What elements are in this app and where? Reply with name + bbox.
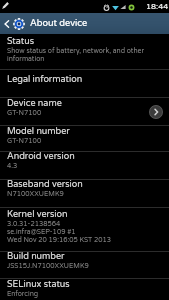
- staticText: GT-N7100: [7, 109, 42, 117]
- staticText: 4.3: [7, 162, 18, 170]
- button[interactable]: Android version: [0, 152, 169, 179]
- button[interactable]: Device name: [0, 98, 169, 125]
- button[interactable]: Baseband version: [0, 180, 169, 207]
- staticText: information: [7, 55, 45, 63]
- staticText: JSS15J.N7100XXUEMK9: [7, 262, 89, 270]
- staticText: Enforcing: [7, 290, 39, 298]
- staticText: N7100XXUEMK9: [7, 190, 64, 198]
- staticText: Show status of battery, network, and oth…: [7, 47, 145, 55]
- staticText: Baseband version: [7, 179, 83, 190]
- staticText: 18:44: [146, 2, 169, 12]
- button[interactable]: Kernel version: [0, 208, 169, 251]
- staticText: Wed Nov 20 19:16:05 KST 2013: [7, 236, 111, 244]
- button[interactable]: Navigate up: [0, 13, 13, 34]
- staticText: Legal information: [7, 74, 83, 85]
- staticText: Kernel version: [7, 209, 68, 220]
- button[interactable]: SELinux status: [0, 279, 169, 300]
- staticText: Build number: [7, 251, 65, 262]
- staticText: Status: [7, 36, 34, 47]
- staticText: GT-N7100: [7, 137, 42, 145]
- staticText: About device: [30, 18, 88, 29]
- staticText: 3.0.31-2138564: [7, 220, 61, 228]
- button[interactable]: Build number: [0, 252, 169, 278]
- staticText: SELinux status: [7, 279, 70, 290]
- staticText: Device name: [7, 98, 62, 109]
- staticText: Android version: [7, 151, 75, 162]
- button[interactable]: Legal information: [0, 70, 169, 97]
- button[interactable]: Edit device name: [149, 105, 163, 119]
- staticText: se.infra@SEP-109 #1: [7, 228, 76, 236]
- staticText: Model number: [7, 126, 70, 137]
- button[interactable]: Status: [0, 34, 169, 69]
- button[interactable]: Model number: [0, 126, 169, 151]
